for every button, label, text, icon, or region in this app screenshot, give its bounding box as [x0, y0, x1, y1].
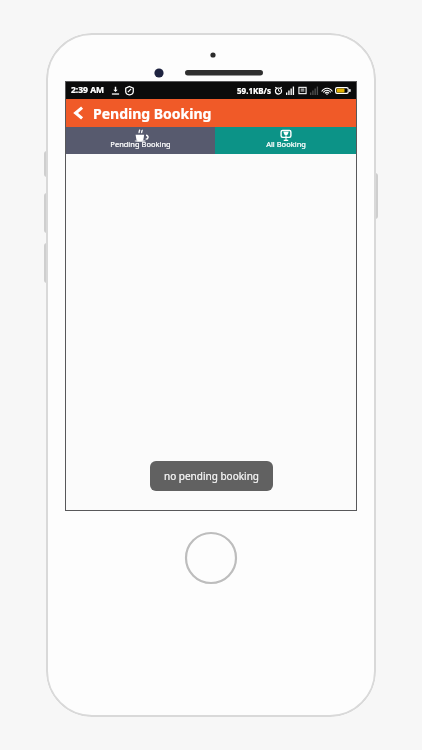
button[interactable]: no pending booking: [150, 461, 273, 491]
staticText: Pending Booking: [93, 104, 212, 123]
staticText: no pending booking: [164, 469, 259, 483]
staticText: 59.1KB/s: [237, 85, 271, 96]
staticText: Pending Booking: [110, 139, 171, 149]
button[interactable]: Pending Booking: [65, 127, 215, 154]
button[interactable]: Back: [65, 99, 93, 127]
staticText: 2:39 AM: [71, 84, 105, 96]
button[interactable]: All Booking: [215, 127, 357, 154]
staticText: All Booking: [266, 139, 306, 149]
